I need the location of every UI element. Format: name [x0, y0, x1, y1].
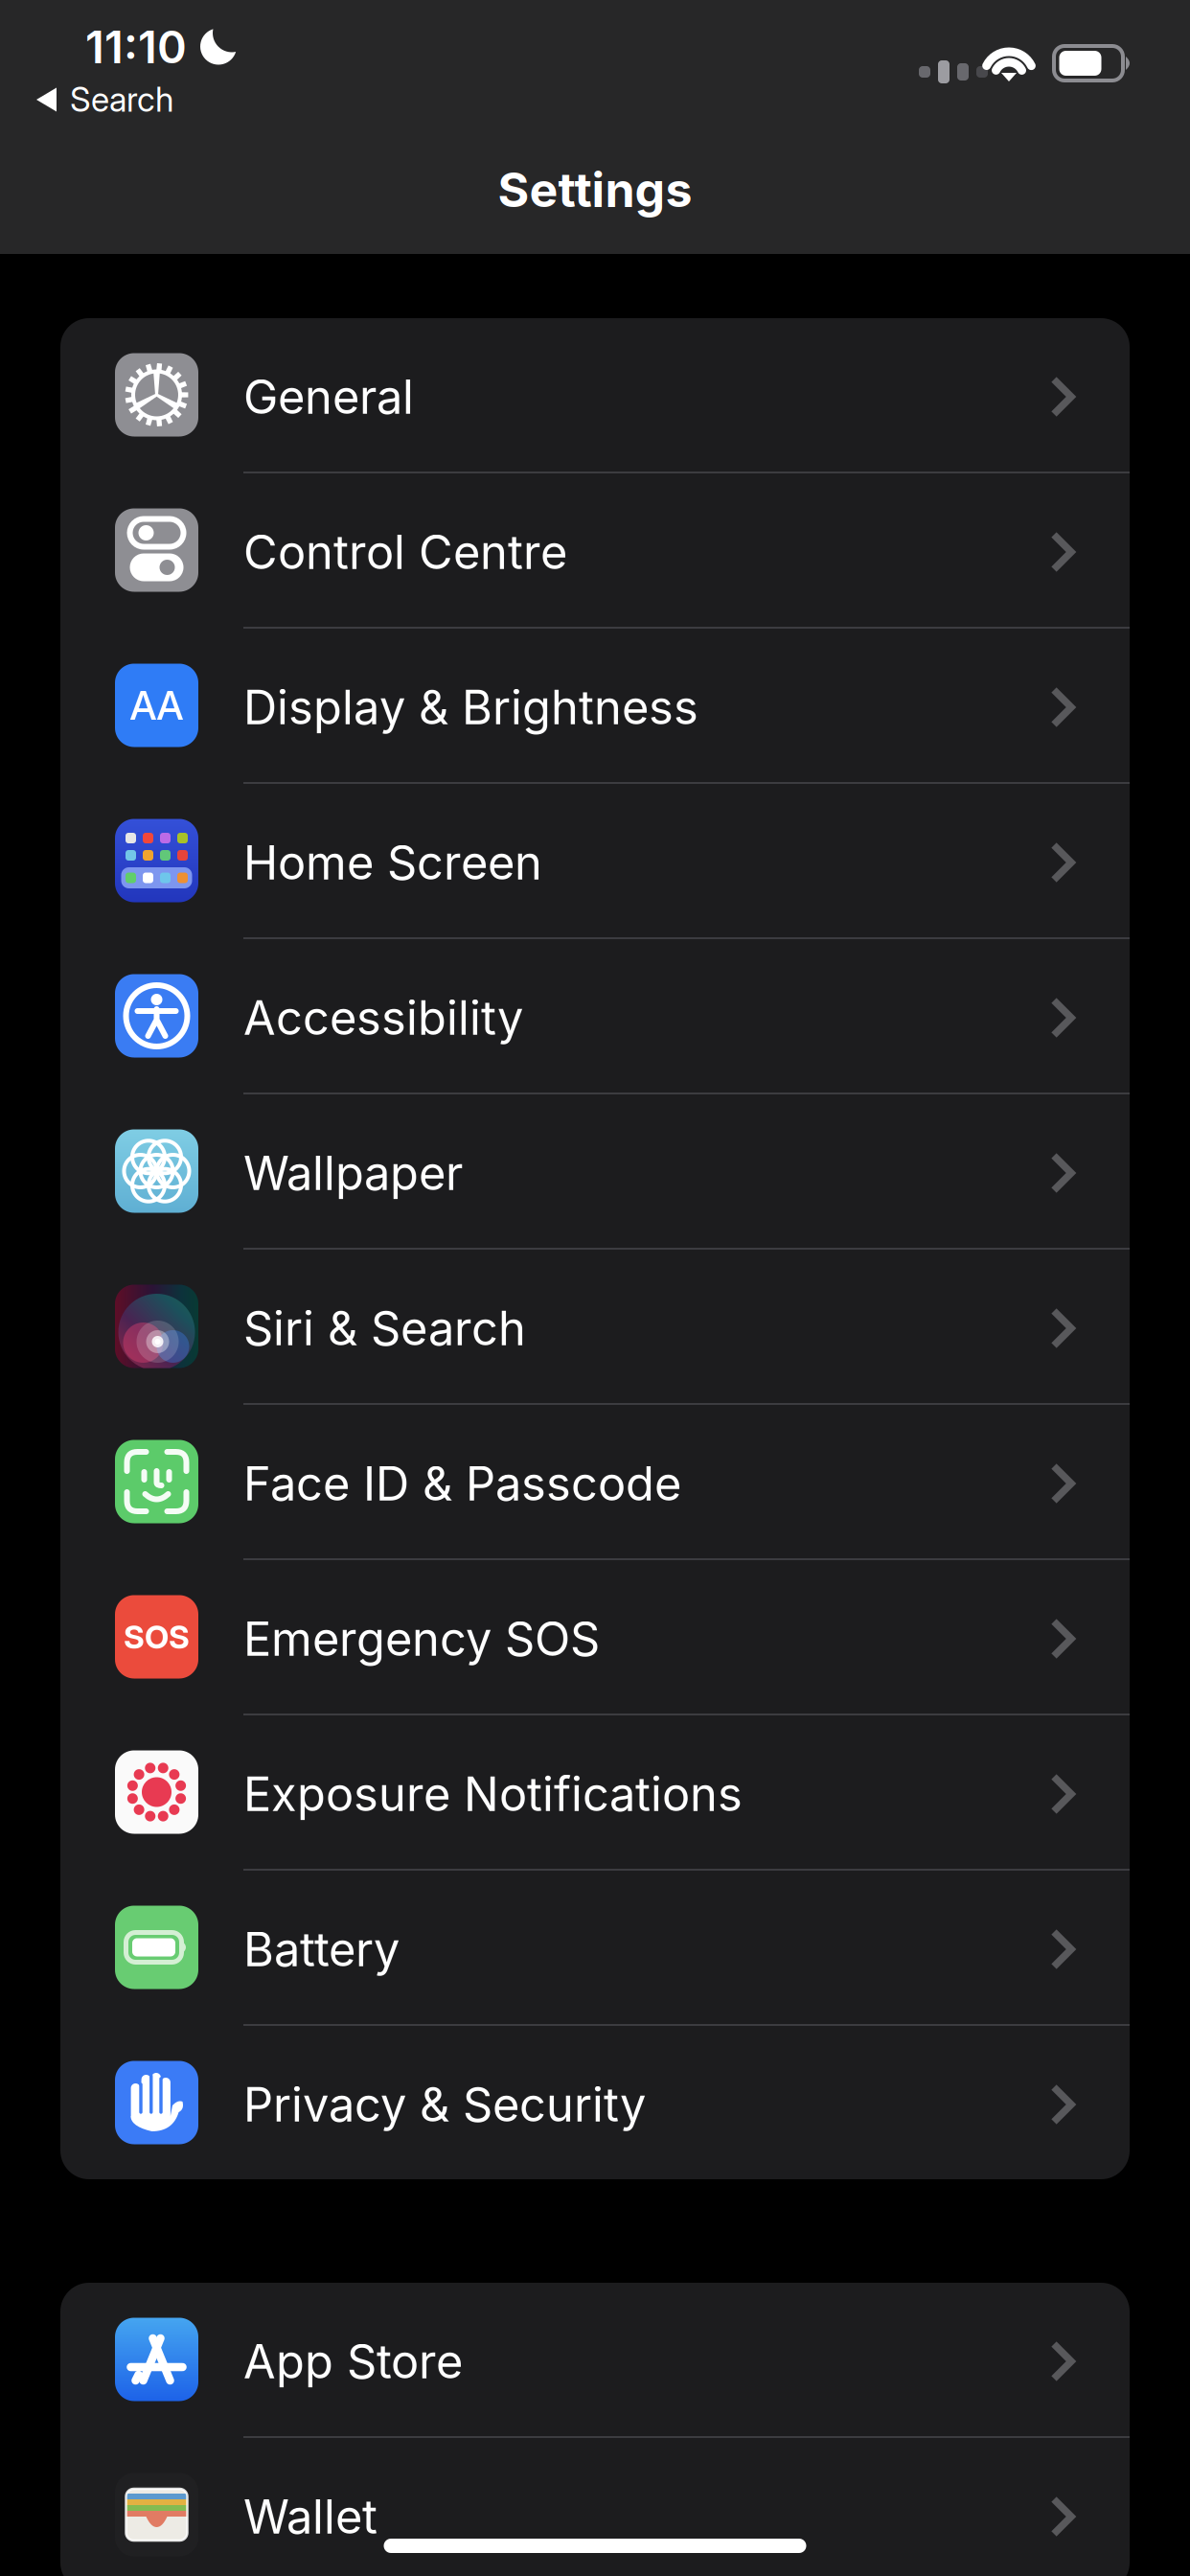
- button[interactable]: Battery: [60, 1871, 1130, 2026]
- button[interactable]: Wallet: [60, 2438, 1130, 2576]
- button[interactable]: Exposure Notifications: [60, 1715, 1130, 1871]
- staticText: Exposure Notifications: [243, 1766, 743, 1822]
- button[interactable]: Home Screen: [60, 784, 1130, 939]
- button[interactable]: Accessibility: [60, 939, 1130, 1094]
- staticText: Privacy & Security: [243, 2076, 646, 2133]
- staticText: Home Screen: [243, 834, 542, 891]
- staticText: Face ID & Passcode: [243, 1455, 681, 1512]
- button[interactable]: App Store: [60, 2283, 1130, 2438]
- staticText: AA: [130, 681, 183, 729]
- staticText: General: [243, 369, 414, 425]
- staticText: Display & Brightness: [243, 679, 698, 736]
- staticText: Settings: [498, 161, 692, 218]
- button[interactable]: Search: [36, 72, 173, 127]
- button[interactable]: SOS: [60, 1560, 1130, 1715]
- button[interactable]: Face ID & Passcode: [60, 1405, 1130, 1560]
- staticText: 11:10: [85, 20, 187, 74]
- button[interactable]: Siri & Search: [60, 1250, 1130, 1405]
- staticText: Search: [70, 80, 173, 120]
- staticText: Emergency SOS: [243, 1611, 600, 1667]
- staticText: SOS: [124, 1617, 190, 1656]
- staticText: Wallpaper: [243, 1145, 463, 1201]
- staticText: App Store: [243, 2333, 463, 2390]
- button[interactable]: Privacy & Security: [60, 2026, 1130, 2179]
- staticText: Siri & Search: [243, 1300, 526, 1357]
- staticText: Accessibility: [243, 990, 523, 1046]
- button[interactable]: General: [60, 318, 1130, 473]
- staticText: Control Centre: [243, 524, 567, 580]
- staticText: Battery: [243, 1921, 400, 1978]
- button[interactable]: Control Centre: [60, 473, 1130, 629]
- button[interactable]: Wallpaper: [60, 1094, 1130, 1250]
- staticText: Wallet: [243, 2488, 378, 2545]
- button[interactable]: AA: [60, 629, 1130, 784]
